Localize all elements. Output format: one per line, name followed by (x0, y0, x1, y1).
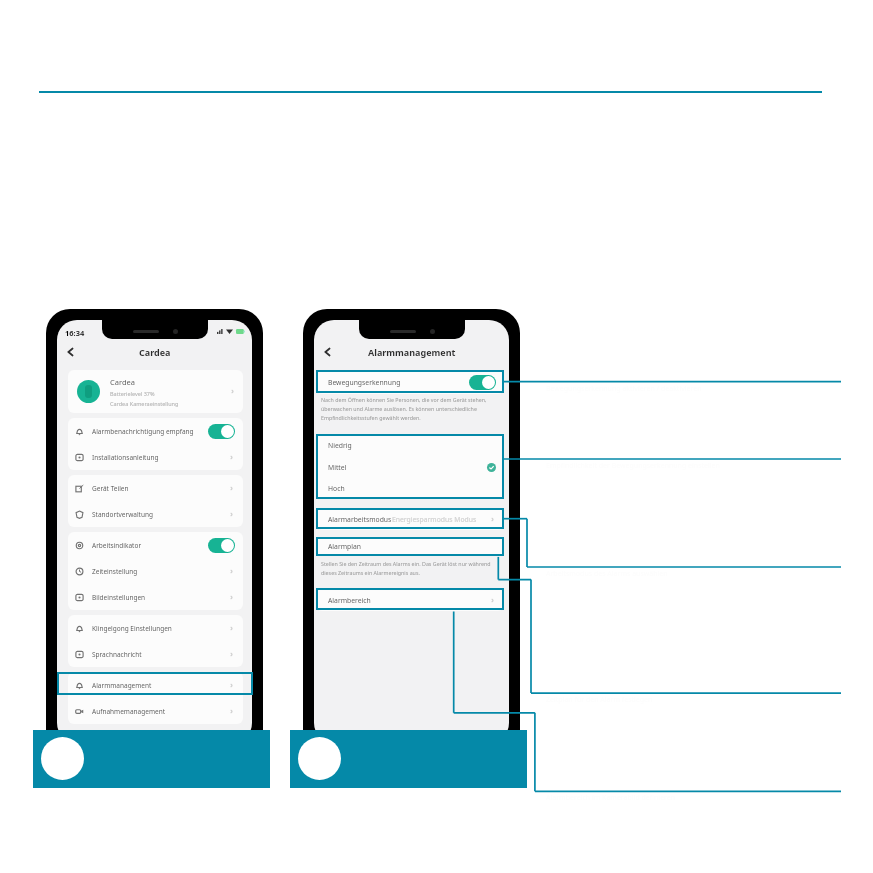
button[interactable]: Alarmarbeitsmodus (316, 509, 504, 530)
button[interactable]: Sprachnachricht (68, 641, 243, 667)
staticText: Gerät Teilen (92, 484, 129, 493)
staticText: Bildeinstellungen (92, 593, 146, 602)
button[interactable]: Standortverwaltung (68, 501, 243, 527)
staticText: Arbeitsindikator (92, 541, 142, 550)
button[interactable]: Back (320, 344, 336, 360)
button[interactable]: Mittel (316, 456, 504, 478)
staticText: Niedrig (328, 441, 352, 450)
button[interactable]: Alarmmanagement (68, 672, 243, 698)
staticText: 16:34 (65, 328, 85, 338)
button[interactable]: Gerät Teilen (68, 475, 243, 501)
staticText: Cardea Kameraeinstellung (110, 400, 179, 407)
staticText: Cardea (110, 377, 135, 387)
staticText: Mittel (328, 463, 347, 472)
button[interactable]: Alarmbenachrichtigung empfang (68, 418, 243, 444)
staticText: Sprachnachricht (92, 650, 142, 659)
button[interactable]: Hoch (316, 478, 504, 499)
staticText: Installationsanleitung (92, 453, 159, 462)
button[interactable]: Installationsanleitung (68, 444, 243, 470)
button[interactable]: Step marker (298, 737, 341, 780)
staticText: Standortverwaltung (92, 510, 154, 519)
staticText: Energiesparmodus Modus (392, 515, 477, 524)
staticText: Klingelgong Einstellungen (92, 624, 172, 633)
staticText: Alarmbereich (328, 596, 371, 605)
button[interactable]: Cardea (68, 370, 243, 413)
button[interactable]: Bewegungserkennung (316, 371, 504, 394)
staticText: Batterielevel 37% (110, 390, 155, 397)
staticText: Stellen Sie den Zeitraum des Alarms ein.… (321, 560, 499, 576)
staticText: Alarmplan (328, 542, 362, 551)
staticText: Bewegungserkennung (328, 378, 401, 387)
button[interactable]: Back (63, 344, 79, 360)
button[interactable]: Niedrig (316, 434, 504, 456)
staticText: Alarmarbeitsmodus (328, 515, 392, 524)
button[interactable]: Zeiteinstellung (68, 558, 243, 584)
button[interactable]: Alarmbereich (316, 589, 504, 611)
button[interactable]: Bildeinstellungen (68, 584, 243, 610)
staticText: Aufnahmemanagement (92, 707, 165, 716)
button[interactable]: Arbeitsindikator (68, 532, 243, 558)
staticText: Alarmmanagement (368, 346, 456, 358)
button[interactable]: Alarmplan (316, 537, 504, 556)
button[interactable]: Klingelgong Einstellungen (68, 615, 243, 641)
staticText: Cardea (139, 346, 171, 358)
button[interactable]: Aufnahmemanagement (68, 698, 243, 724)
staticText: Hoch (328, 484, 345, 493)
staticText: Alarmbenachrichtigung empfang (92, 427, 194, 436)
staticText: Alarmmanagement (92, 681, 152, 690)
button[interactable]: Step marker (41, 737, 84, 780)
staticText: Zeiteinstellung (92, 567, 138, 576)
staticText: Nach dem Öffnen können Sie Personen, die… (321, 396, 499, 421)
